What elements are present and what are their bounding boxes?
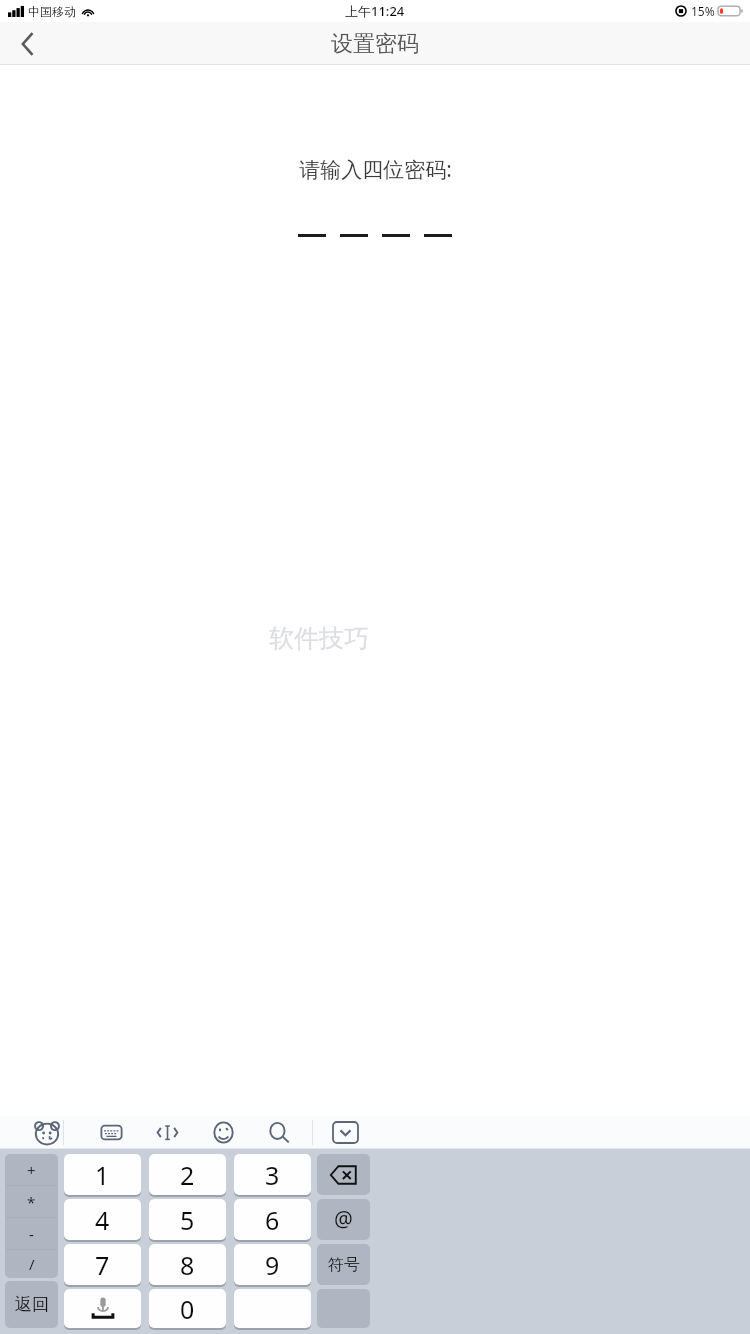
- button[interactable]: 5: [149, 1199, 226, 1240]
- button[interactable]: [234, 1289, 311, 1328]
- staticText: 返回: [15, 1294, 49, 1315]
- button[interactable]: -: [5, 1218, 58, 1249]
- staticText: 8: [180, 1248, 195, 1282]
- button[interactable]: 2: [149, 1154, 226, 1195]
- button[interactable]: Hide keyboard: [327, 1116, 363, 1149]
- staticText: 9: [265, 1248, 280, 1282]
- staticText: 符号: [328, 1255, 360, 1275]
- staticText: 1: [95, 1158, 110, 1192]
- button[interactable]: 4: [64, 1199, 141, 1240]
- staticText: *: [27, 1192, 36, 1212]
- staticText: 6: [265, 1203, 280, 1237]
- staticText: 上午11:24: [345, 2, 405, 20]
- staticText: /: [29, 1254, 35, 1274]
- staticText: 2: [180, 1158, 195, 1192]
- button[interactable]: Cursor: [147, 1116, 187, 1149]
- button[interactable]: 8: [149, 1244, 226, 1285]
- staticText: 中国移动: [28, 4, 76, 19]
- staticText: 5: [180, 1203, 195, 1237]
- staticText: 请输入四位密码:: [299, 155, 452, 184]
- button[interactable]: Space / Voice input: [64, 1289, 141, 1328]
- staticText: @: [334, 1205, 353, 1234]
- button[interactable]: Emoji: [203, 1116, 243, 1149]
- staticText: +: [27, 1160, 36, 1180]
- staticText: 软件技巧: [269, 623, 369, 654]
- button[interactable]: Baidu input: [31, 1116, 63, 1149]
- button[interactable]: Search: [259, 1116, 299, 1149]
- button[interactable]: 6: [234, 1199, 311, 1240]
- button[interactable]: @: [317, 1199, 370, 1240]
- staticText: -: [29, 1224, 34, 1244]
- staticText: 0: [180, 1292, 195, 1326]
- staticText: 3: [265, 1158, 280, 1192]
- button[interactable]: *: [5, 1186, 58, 1217]
- button[interactable]: +: [5, 1154, 58, 1185]
- button[interactable]: 7: [64, 1244, 141, 1285]
- button[interactable]: 符号: [317, 1244, 370, 1285]
- staticText: 7: [95, 1248, 110, 1282]
- button[interactable]: 1: [64, 1154, 141, 1195]
- staticText: 4: [95, 1203, 110, 1237]
- button[interactable]: Back: [0, 22, 56, 65]
- staticText: 15%: [691, 3, 715, 19]
- button[interactable]: /: [5, 1250, 58, 1278]
- button[interactable]: 9: [234, 1244, 311, 1285]
- button[interactable]: 3: [234, 1154, 311, 1195]
- button[interactable]: 0: [149, 1289, 226, 1328]
- button[interactable]: Keyboard: [91, 1116, 131, 1149]
- button[interactable]: Delete: [317, 1154, 370, 1195]
- staticText: 设置密码: [331, 30, 419, 58]
- button[interactable]: 返回: [5, 1281, 58, 1328]
